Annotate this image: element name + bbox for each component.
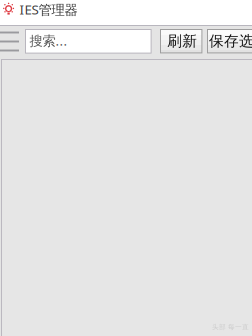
staticText: 刷新 [167, 32, 197, 50]
staticText: 保存选择 [209, 32, 252, 50]
staticText: 搜索... [29, 32, 67, 49]
button[interactable]: 刷新 [160, 29, 202, 53]
button[interactable]: Toggle list view [0, 31, 19, 52]
staticText: 头部 每一直 [212, 323, 249, 331]
button[interactable]: 保存选择 [207, 29, 252, 53]
staticText: IES管理器 [19, 0, 77, 18]
